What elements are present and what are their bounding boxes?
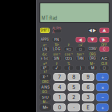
button[interactable]: 7 [53, 73, 66, 81]
button[interactable]: x⁻¹ [39, 73, 51, 81]
button[interactable]: C [99, 46, 109, 52]
staticText: 9 [87, 74, 90, 80]
button[interactable]: STO [39, 93, 51, 101]
button[interactable]: 5 [68, 83, 80, 91]
button[interactable]: · [68, 103, 80, 111]
button[interactable]: ALPHA [52, 28, 62, 33]
staticText: ANS [41, 85, 49, 89]
staticText: x³ [43, 62, 46, 66]
staticText: × [101, 84, 104, 90]
button[interactable]: CONV [88, 46, 97, 52]
button[interactable]: 4 [53, 83, 66, 91]
staticText: ▲ [102, 28, 106, 33]
staticText: eˣ [43, 43, 46, 47]
button[interactable]: ▲ [99, 28, 109, 33]
button[interactable]: E [82, 103, 94, 111]
button[interactable]: LOG [52, 46, 62, 52]
button[interactable]: 3 [82, 93, 94, 101]
button[interactable]: x◻ [64, 46, 73, 52]
staticText: FN [54, 38, 59, 42]
button[interactable]: ▶ [99, 37, 109, 42]
staticText: M [91, 65, 94, 70]
button[interactable]: COS [64, 56, 73, 61]
button[interactable]: × [96, 83, 109, 91]
staticText: ( [68, 65, 69, 70]
button[interactable]: M+ [39, 103, 51, 111]
staticText: 7 [58, 74, 61, 80]
staticText: 10ˣ [55, 43, 59, 47]
staticText: ∛ [68, 43, 70, 47]
button[interactable]: AC [99, 56, 109, 61]
staticText: ÷ [101, 74, 104, 80]
staticText: a b/c [41, 57, 49, 60]
staticText: STO [42, 95, 49, 99]
staticText: ) [80, 65, 81, 70]
button[interactable]: DRG [88, 56, 97, 61]
staticText: x! [44, 70, 47, 73]
staticText: cos⁻¹ [65, 53, 73, 56]
staticText: ◀ [78, 37, 82, 42]
button[interactable]: − [96, 93, 109, 101]
button[interactable]: 0 [53, 103, 66, 111]
button[interactable]: M [88, 65, 97, 70]
button[interactable]: FN [52, 37, 62, 42]
button[interactable]: 9 [82, 73, 94, 81]
staticText: DRG [89, 53, 95, 56]
button[interactable]: + [96, 103, 109, 111]
staticText: x◻ [66, 47, 71, 51]
button[interactable]: TAN [76, 56, 85, 61]
button[interactable]: a b/c [40, 56, 50, 61]
button[interactable]: ◻ [76, 46, 85, 52]
button[interactable]: ÷ [96, 73, 109, 81]
staticText: DRG [42, 80, 48, 84]
staticText: tan⁻¹ [77, 53, 84, 56]
button[interactable]: √ [52, 65, 62, 70]
staticText: RCL [42, 90, 48, 94]
button[interactable]: ANS [39, 83, 51, 91]
button[interactable]: ◀ [76, 37, 85, 42]
staticText: % [67, 62, 70, 66]
staticText: ◻√ [78, 43, 82, 47]
staticText: CLR [101, 62, 107, 66]
staticText: ◀▶ [88, 28, 96, 33]
staticText: M+ [43, 105, 48, 110]
staticText: COS [65, 56, 72, 60]
button[interactable]: 6 [82, 83, 94, 91]
staticText: OFF [101, 43, 107, 47]
staticText: AC [101, 56, 107, 61]
staticText: CONV [88, 47, 96, 51]
staticText: LOG [53, 47, 61, 51]
staticText: SHIFT [40, 28, 49, 32]
button[interactable]: ◀▶ [88, 28, 97, 33]
staticText: DRG [89, 57, 95, 60]
staticText: E [87, 104, 90, 110]
button[interactable]: ▼ [88, 37, 97, 42]
button[interactable]: 1 [53, 93, 66, 101]
button[interactable]: ( [64, 65, 73, 70]
staticText: 8 [72, 74, 75, 80]
button[interactable]: 8 [68, 73, 80, 81]
staticText: 1 [58, 94, 60, 100]
staticText: SIN [54, 56, 60, 60]
staticText: ▼ [90, 37, 94, 42]
staticText: TAN [77, 56, 84, 60]
staticText: x⁻¹ [43, 75, 48, 79]
staticText: − [101, 94, 104, 100]
button[interactable]: ) [76, 65, 85, 70]
button[interactable]: APPS [40, 37, 50, 42]
staticText: 3 [87, 94, 90, 100]
staticText: ◻ [79, 47, 82, 51]
staticText: ∛ [56, 62, 58, 66]
staticText: 4 [58, 84, 61, 90]
button[interactable]: ◻ [99, 65, 109, 70]
button[interactable]: SHIFT [40, 28, 50, 33]
button[interactable]: 2 [68, 93, 80, 101]
staticText: + [101, 104, 104, 110]
staticText: M− [43, 100, 48, 104]
button[interactable]: LN [40, 46, 50, 52]
staticText: sin⁻¹ [53, 53, 60, 56]
button[interactable]: x² [40, 65, 50, 70]
button[interactable]: SIN [52, 56, 62, 61]
staticText: · [73, 104, 74, 110]
